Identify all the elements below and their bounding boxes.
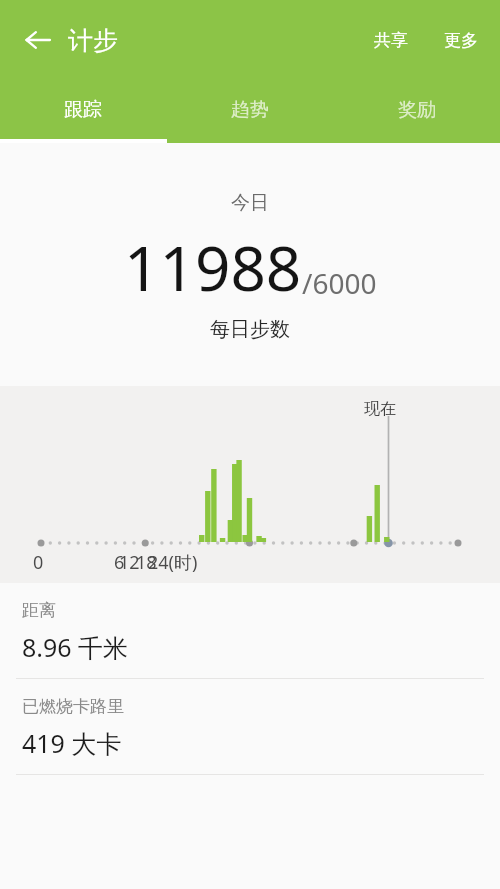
button[interactable]: 更多: [434, 18, 488, 63]
button[interactable]: 共享: [364, 18, 418, 63]
staticText: 更多: [444, 30, 478, 51]
staticText: 419 大卡: [22, 726, 122, 760]
staticText: 12: [119, 550, 140, 575]
button[interactable]: 跟踪: [0, 80, 166, 139]
staticText: 6: [114, 550, 125, 575]
staticText: 今日: [231, 191, 269, 215]
staticText: 共享: [374, 30, 408, 51]
button[interactable]: 距离: [0, 583, 500, 678]
staticText: 计步: [68, 25, 118, 56]
staticText: 8.96 千米: [22, 630, 129, 664]
staticText: 已燃烧卡路里: [22, 696, 124, 717]
button[interactable]: 奖励: [333, 80, 500, 139]
staticText: 18: [136, 550, 157, 575]
staticText: 11988: [124, 225, 302, 309]
staticText: 现在: [364, 399, 396, 419]
button[interactable]: Back: [16, 18, 60, 62]
staticText: 奖励: [398, 98, 436, 122]
staticText: 趋势: [231, 98, 269, 122]
staticText: /6000: [302, 264, 377, 302]
staticText: 24(时): [148, 550, 198, 575]
button[interactable]: 趋势: [166, 80, 333, 139]
staticText: 跟踪: [64, 98, 102, 122]
button[interactable]: 已燃烧卡路里: [0, 679, 500, 774]
staticText: 0: [33, 550, 44, 575]
staticText: 距离: [22, 600, 56, 621]
staticText: 每日步数: [210, 317, 290, 342]
